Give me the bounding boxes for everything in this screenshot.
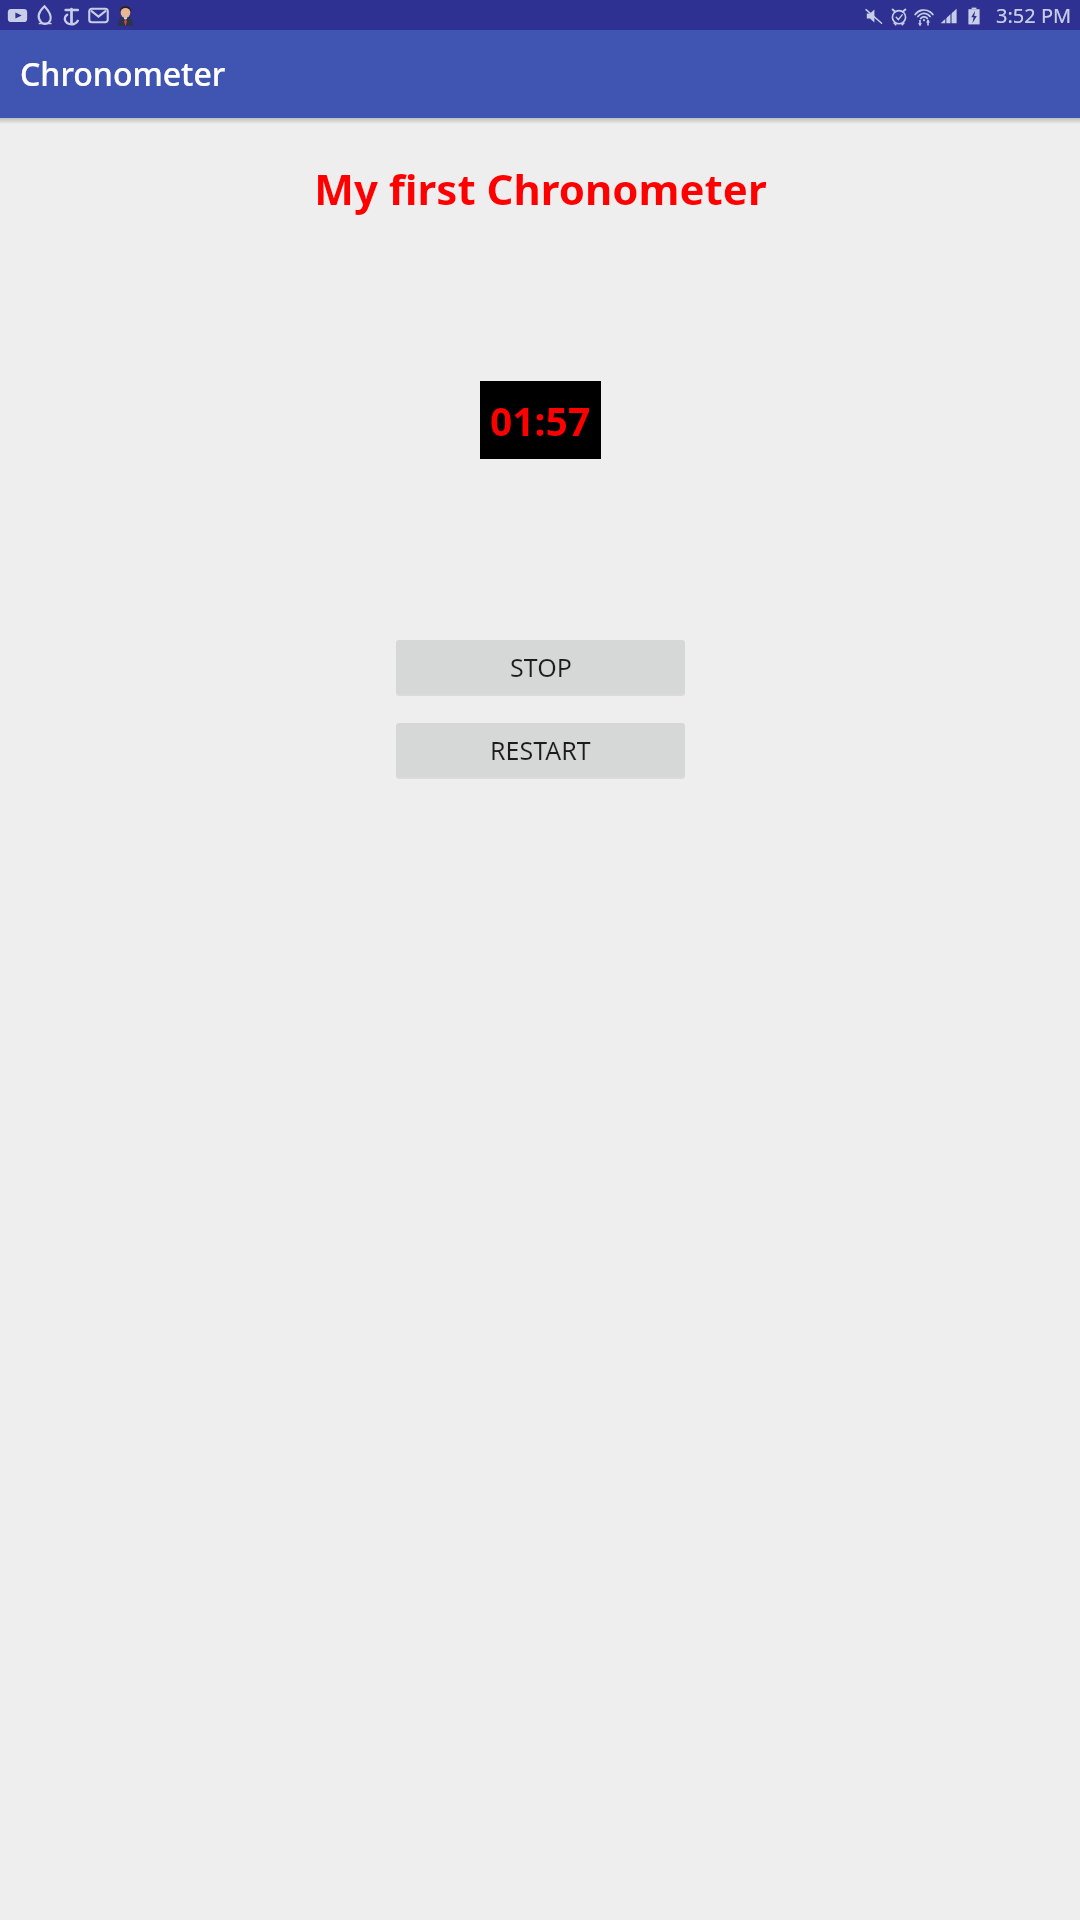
staticText: STOP <box>510 650 572 684</box>
button[interactable]: STOP <box>396 640 685 694</box>
staticText: RESTART <box>490 733 591 767</box>
button[interactable]: RESTART <box>396 723 685 777</box>
staticText: My first Chronometer <box>314 160 767 217</box>
staticText: 3:52 PM <box>996 2 1072 29</box>
staticText: 01:57 <box>490 394 591 447</box>
staticText: Chronometer <box>20 52 226 96</box>
